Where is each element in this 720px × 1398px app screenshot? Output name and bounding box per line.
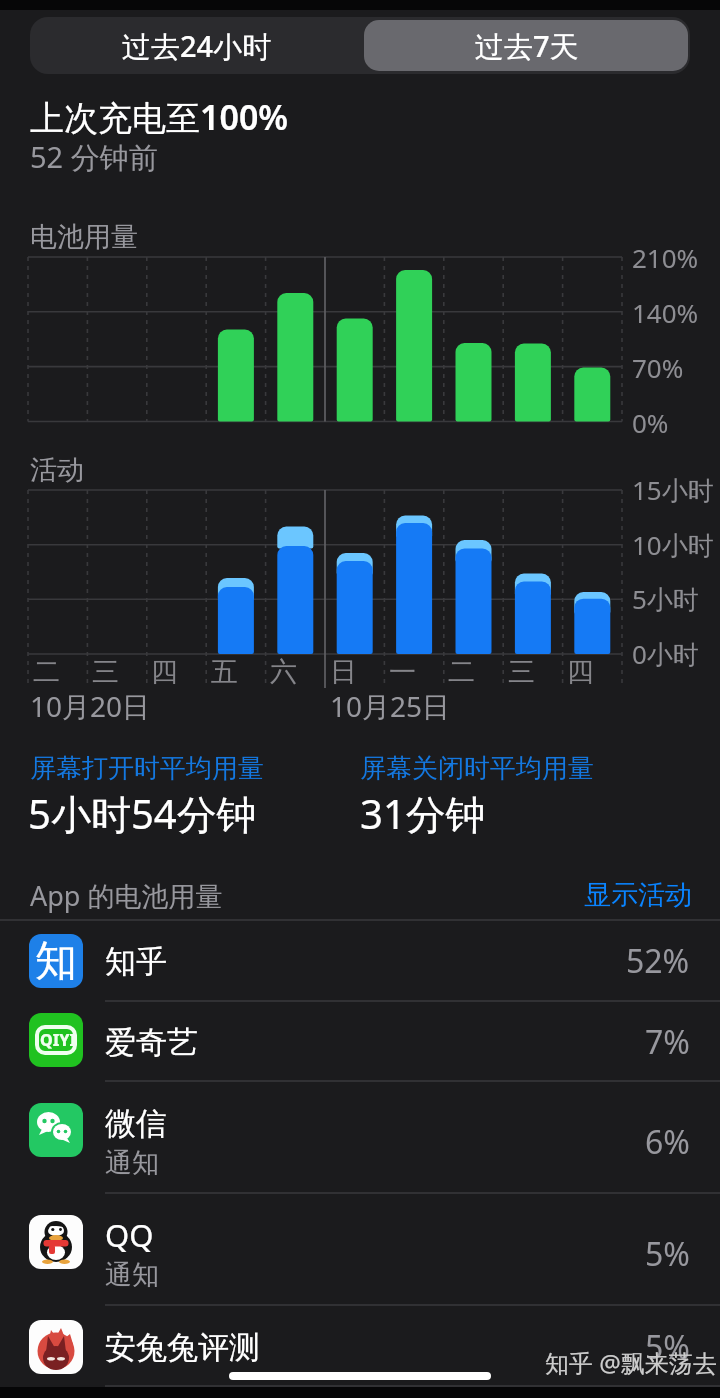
staticText: 知乎 <box>105 942 167 981</box>
staticText: 电池用量 <box>30 220 138 254</box>
staticText: 屏幕打开时平均用量 <box>30 752 264 785</box>
staticText: 五 <box>211 655 238 689</box>
staticText: 爱奇艺 <box>105 1023 198 1062</box>
staticText: 0小时 <box>632 636 699 672</box>
staticText: QQ <box>105 1214 154 1256</box>
staticText: 52 分钟前 <box>30 137 158 177</box>
staticText: 通知 <box>105 1146 159 1180</box>
button[interactable] <box>0 1193 720 1305</box>
staticText: 显示活动 <box>584 878 692 912</box>
button[interactable]: 过去24小时 <box>30 17 364 74</box>
staticText: 210% <box>632 240 699 275</box>
staticText: 31分钟 <box>360 786 486 841</box>
staticText: 通知 <box>105 1258 159 1292</box>
staticText: 5小时54分钟 <box>28 786 257 841</box>
staticText: 一 <box>389 655 416 689</box>
staticText: 5% <box>645 1232 690 1276</box>
staticText: 0% <box>632 405 669 440</box>
button[interactable] <box>0 1305 720 1387</box>
staticText: 上次充电至100% <box>30 94 289 140</box>
button[interactable]: iQIYI <box>0 1001 720 1081</box>
button[interactable]: 显示活动 <box>552 860 692 930</box>
staticText: 微信 <box>105 1104 167 1143</box>
staticText: 6% <box>645 1120 690 1164</box>
staticText: 5小时 <box>632 581 699 617</box>
staticText: 10月20日 <box>30 687 151 725</box>
staticText: 5% <box>645 1325 690 1369</box>
staticText: 二 <box>33 655 60 689</box>
staticText: 过去7天 <box>475 26 579 66</box>
staticText: 140% <box>632 295 699 330</box>
staticText: 10月25日 <box>330 687 451 725</box>
staticText: 日 <box>330 655 357 689</box>
staticText: 过去24小时 <box>122 26 272 66</box>
staticText: iQIYI <box>35 1029 77 1051</box>
staticText: App 的电池用量 <box>30 877 223 914</box>
staticText: 安兔兔评测 <box>105 1328 260 1367</box>
staticText: 四 <box>567 655 594 689</box>
staticText: 二 <box>448 655 475 689</box>
staticText: 屏幕关闭时平均用量 <box>360 752 594 785</box>
staticText: 70% <box>632 350 684 385</box>
staticText: 52% <box>626 939 690 983</box>
button[interactable]: 过去7天 <box>364 17 690 74</box>
staticText: 活动 <box>30 453 84 487</box>
staticText: 三 <box>92 655 119 689</box>
staticText: 六 <box>270 655 297 689</box>
staticText: 四 <box>151 655 178 689</box>
staticText: 知 <box>35 935 77 988</box>
staticText: 三 <box>508 655 535 689</box>
staticText: 知乎 @飘来荡去 <box>545 1346 717 1379</box>
staticText: 10小时 <box>632 527 714 563</box>
button[interactable]: 知 <box>0 920 720 1001</box>
staticText: 7% <box>645 1020 690 1064</box>
staticText: 15小时 <box>632 472 714 508</box>
button[interactable] <box>0 1081 720 1193</box>
